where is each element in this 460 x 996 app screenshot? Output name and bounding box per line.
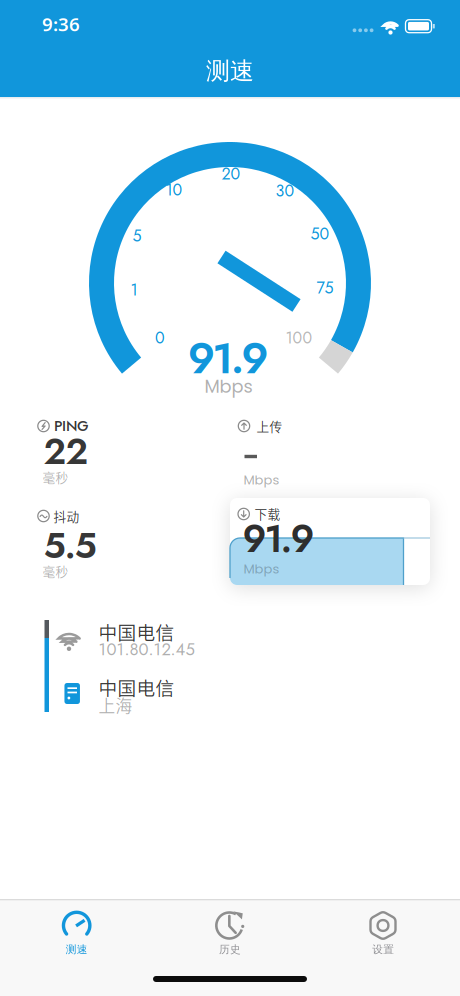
staticText: 下载 (254, 504, 280, 523)
staticText: Mbps (204, 374, 252, 399)
button[interactable]: 测速 (0, 900, 153, 996)
staticText: Mbps (243, 471, 279, 489)
staticText: 中国电信 (98, 618, 174, 645)
staticText: 9:36 (42, 12, 80, 36)
staticText: 测速 (66, 943, 88, 956)
staticText: 75 (316, 276, 333, 299)
staticText: 上传 (256, 417, 282, 435)
staticText: 91.9 (188, 328, 268, 389)
staticText: 5 (132, 224, 141, 247)
button[interactable]: 设置 (307, 900, 460, 996)
staticText: 中国电信 (98, 673, 174, 700)
staticText: 设置 (372, 943, 394, 956)
staticText: 毫秒 (42, 562, 68, 580)
staticText: PING (54, 415, 89, 437)
staticText: Mbps (243, 560, 279, 578)
staticText: 0 (155, 326, 165, 349)
staticText: 10 (165, 178, 182, 201)
staticText: 毫秒 (42, 468, 68, 486)
staticText: 91.9 (242, 512, 314, 566)
staticText: 1 (130, 278, 137, 301)
staticText: 测速 (206, 56, 254, 86)
staticText: 20 (221, 162, 240, 185)
staticText: 抖动 (53, 507, 79, 525)
staticText: 上海 (98, 693, 132, 717)
button[interactable]: 历史 (153, 900, 307, 996)
staticText: 5.5 (43, 519, 96, 571)
staticText: 50 (310, 222, 329, 245)
staticText: 22 (43, 425, 88, 477)
staticText: 30 (275, 179, 294, 202)
staticText: 历史 (219, 943, 241, 956)
staticText: 100 (285, 326, 312, 349)
staticText: 101.80.12.45 (98, 637, 194, 662)
